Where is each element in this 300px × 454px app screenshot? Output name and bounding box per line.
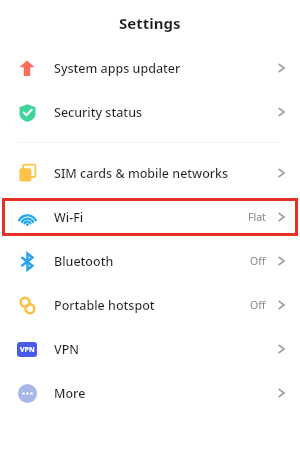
staticText: More — [54, 385, 86, 402]
staticText: VPN — [54, 341, 80, 358]
button[interactable]: Wi-Fi — [0, 195, 300, 239]
staticText: Portable hotspot — [54, 297, 155, 314]
button[interactable]: Security status — [0, 90, 300, 134]
button[interactable]: VPN — [0, 327, 300, 371]
staticText: Flat — [248, 210, 266, 224]
staticText: Off — [250, 254, 266, 268]
staticText: Security status — [54, 104, 143, 121]
button[interactable]: SIM cards & mobile networks — [0, 151, 300, 195]
staticText: Off — [250, 298, 266, 312]
staticText: Bluetooth — [54, 253, 114, 270]
staticText: Wi-Fi — [54, 209, 84, 226]
staticText: Settings — [119, 13, 181, 33]
staticText: VPN — [20, 345, 35, 355]
staticText: SIM cards & mobile networks — [54, 165, 229, 182]
staticText: System apps updater — [54, 60, 181, 77]
button[interactable]: More — [0, 371, 300, 415]
button[interactable]: Portable hotspot — [0, 283, 300, 327]
button[interactable]: System apps updater — [0, 46, 300, 90]
button[interactable]: Bluetooth — [0, 239, 300, 283]
